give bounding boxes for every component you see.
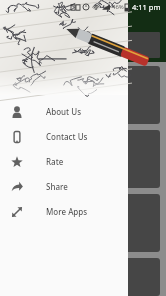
button[interactable]: Share <box>0 174 128 199</box>
staticText: 4:11 pm <box>132 2 161 12</box>
other: About Us <box>11 106 23 118</box>
button[interactable]: Differential <box>6 66 160 124</box>
button[interactable]: Differential <box>6 194 160 252</box>
staticText: Contact Us <box>46 131 88 142</box>
other: Contact Us <box>11 131 23 143</box>
other: More Apps <box>11 206 23 218</box>
staticText: About Us <box>46 106 82 117</box>
button[interactable]: Integral <box>6 258 160 296</box>
staticText: 46% <box>112 3 124 11</box>
button[interactable]: Rate <box>0 149 128 174</box>
staticText: Equations <box>12 104 45 114</box>
button[interactable]: More Apps <box>0 199 128 224</box>
button[interactable]: Contact Us <box>0 124 128 149</box>
other: Share <box>11 181 23 193</box>
staticText: More Apps <box>46 206 88 217</box>
button[interactable]: Number sets <box>6 130 160 188</box>
other: Rate <box>11 156 23 168</box>
button[interactable]: About Us <box>0 99 128 124</box>
staticText: Differential <box>12 94 49 104</box>
staticText: Number sets <box>12 158 55 168</box>
staticText: Rate <box>46 156 64 167</box>
staticText: Share <box>46 181 68 192</box>
